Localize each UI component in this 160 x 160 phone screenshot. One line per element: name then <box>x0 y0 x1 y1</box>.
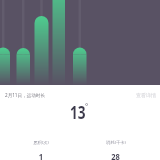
button[interactable]: 2月11日，运动时长 <box>5 92 46 98</box>
button[interactable]: 查看详情 <box>136 92 156 98</box>
staticText: 累积(次) <box>33 139 49 145</box>
staticText: ° <box>85 101 89 111</box>
staticText: 消耗(千卡) <box>106 139 126 145</box>
staticText: 28 <box>111 150 120 160</box>
staticText: 1 <box>39 150 43 160</box>
button[interactable]: 消耗(千卡) <box>78 139 153 160</box>
staticText: 13 <box>70 101 86 124</box>
button[interactable]: 累积(次) <box>3 139 78 160</box>
button[interactable] <box>0 0 160 85</box>
